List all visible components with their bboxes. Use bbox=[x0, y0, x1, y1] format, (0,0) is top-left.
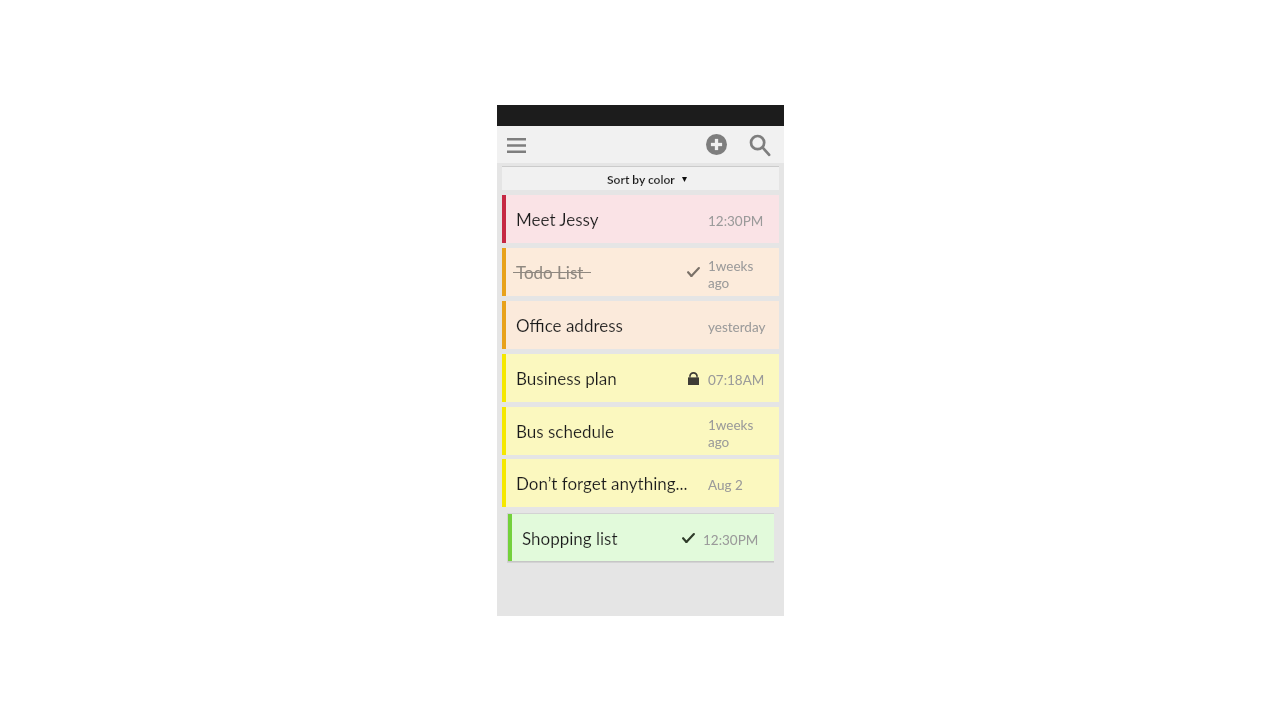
button[interactable]: Shopping list bbox=[508, 514, 774, 561]
button[interactable]: Todo List bbox=[502, 248, 779, 296]
button[interactable]: Sort by color bbox=[502, 167, 779, 190]
staticText: yesterday bbox=[708, 319, 766, 335]
button[interactable]: Open navigation menu bbox=[500, 130, 531, 159]
staticText: 12:30PM bbox=[708, 213, 764, 229]
staticText: Meet Jessy bbox=[516, 209, 599, 229]
button[interactable]: Bus schedule bbox=[502, 407, 779, 455]
staticText: Office address bbox=[516, 315, 623, 335]
button[interactable]: Search bbox=[743, 131, 773, 161]
staticText: Todo List bbox=[516, 262, 584, 282]
staticText: 07:18AM bbox=[708, 372, 765, 388]
staticText: 12:30PM bbox=[703, 532, 759, 548]
staticText: Shopping list bbox=[522, 528, 618, 548]
staticText: Don’t forget anything... bbox=[516, 473, 687, 493]
button[interactable]: Business plan bbox=[502, 354, 779, 402]
button[interactable]: Meet Jessy bbox=[502, 195, 779, 243]
staticText: 1weeks ago bbox=[708, 417, 754, 450]
staticText: Bus schedule bbox=[516, 421, 614, 441]
button[interactable]: Add note bbox=[701, 131, 731, 161]
button[interactable]: Office address bbox=[502, 301, 779, 349]
staticText: 1weeks ago bbox=[708, 258, 754, 291]
staticText: Sort by color bbox=[607, 172, 675, 186]
staticText: Aug 2 bbox=[708, 477, 743, 493]
button[interactable]: Don’t forget anything... bbox=[502, 459, 779, 507]
staticText: Business plan bbox=[516, 368, 617, 388]
